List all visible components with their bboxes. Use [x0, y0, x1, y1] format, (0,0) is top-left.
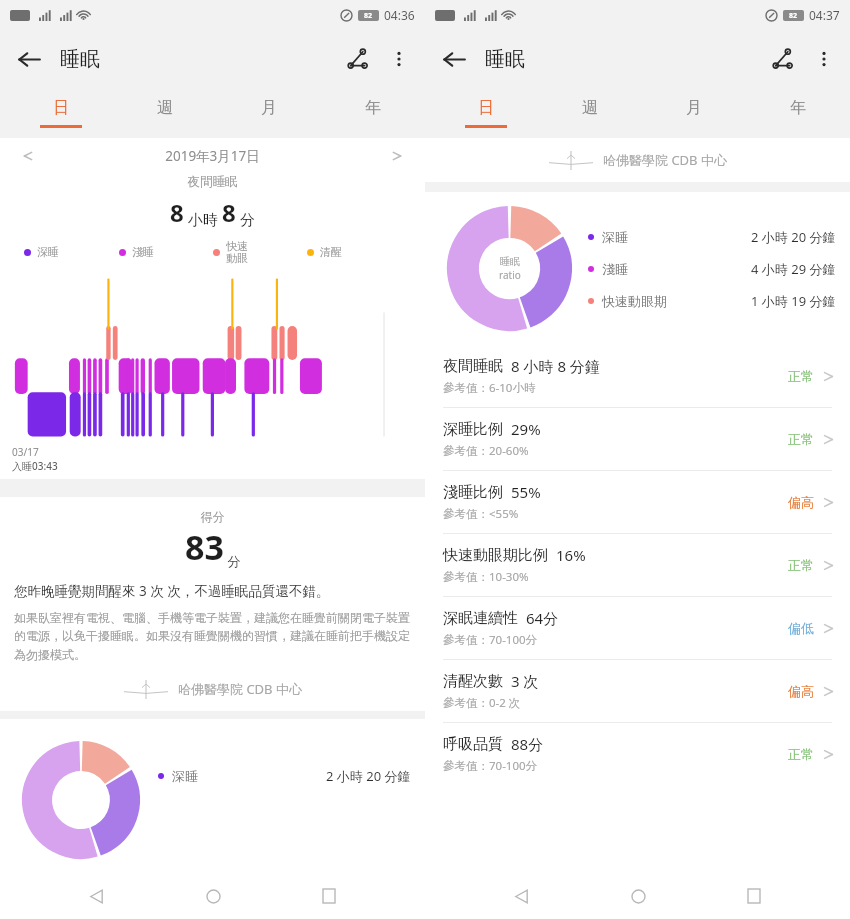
button[interactable]: Back: [8, 38, 50, 80]
button[interactable]: 月: [642, 88, 746, 138]
staticText: 82: [789, 11, 798, 21]
staticText: 夜間睡眠: [443, 357, 503, 376]
staticText: 64分: [526, 608, 559, 628]
staticText: 快速 動眼: [226, 239, 248, 265]
staticText: 月: [686, 98, 702, 118]
staticText: 日: [53, 98, 69, 118]
button[interactable]: Previous day: [14, 142, 42, 170]
staticText: 4 小時 29 分鐘: [751, 260, 836, 278]
button[interactable]: 週: [538, 88, 642, 138]
button[interactable]: 週: [113, 88, 217, 138]
staticText: 清醒: [320, 245, 342, 259]
staticText: 深眠連續性: [443, 609, 518, 628]
staticText: 淺睡: [602, 261, 628, 277]
staticText: 夜間睡眠: [0, 174, 425, 190]
button[interactable]: 深眠連續性: [425, 597, 850, 659]
staticText: 參考值：10-30%: [443, 569, 529, 585]
staticText: 睡眠: [485, 47, 525, 72]
staticText: 您昨晚睡覺期間醒來 3 次 次，不過睡眠品質還不錯。: [14, 582, 330, 600]
button[interactable]: Recents: [734, 876, 774, 916]
staticText: 參考值：<55%: [443, 506, 519, 522]
staticText: 睡眠: [500, 255, 520, 268]
button[interactable]: Home: [193, 876, 233, 916]
button[interactable]: Home: [618, 876, 658, 916]
staticText: 分: [224, 552, 241, 570]
staticText: 03/17: [12, 445, 39, 459]
staticText: 正常: [788, 557, 814, 573]
button[interactable]: 年: [321, 88, 425, 138]
staticText: 83: [185, 524, 224, 570]
staticText: 3 次: [511, 671, 539, 691]
staticText: 82: [364, 11, 373, 21]
staticText: 快速動眼期比例: [443, 546, 548, 565]
staticText: 深睡: [172, 768, 198, 784]
staticText: 小時: [184, 209, 222, 229]
staticText: 偏高: [788, 494, 814, 510]
button[interactable]: Back: [501, 876, 541, 916]
staticText: 1 小時 19 分鐘: [751, 292, 836, 310]
staticText: 如果臥室裡有電視、電腦、手機等電子裝置，建議您在睡覺前關閉電子裝置的電源，以免干…: [14, 610, 411, 663]
staticText: 週: [582, 98, 598, 118]
button[interactable]: 年: [746, 88, 850, 138]
staticText: 入睡03:43: [12, 459, 58, 473]
button[interactable]: Recents: [309, 876, 349, 916]
staticText: 偏高: [788, 683, 814, 699]
staticText: 16%: [556, 545, 586, 565]
staticText: 04:36: [384, 7, 415, 23]
staticText: 8: [222, 196, 236, 229]
staticText: 8: [170, 196, 184, 229]
staticText: 29%: [511, 419, 541, 439]
button[interactable]: 月: [217, 88, 321, 138]
staticText: 淺睡比例: [443, 483, 503, 502]
staticText: 週: [157, 98, 173, 118]
button[interactable]: 淺睡比例: [425, 471, 850, 533]
staticText: 分: [236, 209, 255, 229]
button[interactable]: 日: [433, 88, 538, 138]
button[interactable]: 清醒次數: [425, 660, 850, 722]
button[interactable]: Share: [762, 38, 804, 80]
staticText: 參考值：0-2 次: [443, 695, 521, 711]
button[interactable]: 快速動眼期比例: [425, 534, 850, 596]
staticText: 深睡: [37, 245, 59, 259]
button[interactable]: More options: [379, 39, 419, 79]
button[interactable]: 呼吸品質: [425, 723, 850, 785]
staticText: 哈佛醫學院 CDB 中心: [603, 151, 727, 169]
staticText: 參考值：70-100分: [443, 758, 538, 774]
button[interactable]: More options: [804, 39, 844, 79]
button[interactable]: 日: [8, 88, 113, 138]
staticText: 2 小時 20 分鐘: [751, 228, 836, 246]
staticText: 偏低: [788, 620, 814, 636]
staticText: 2 小時 20 分鐘: [326, 767, 411, 785]
button[interactable]: Share: [337, 38, 379, 80]
staticText: 參考值：20-60%: [443, 443, 529, 459]
staticText: 淺睡: [132, 245, 154, 259]
staticText: 參考值：6-10小時: [443, 380, 536, 396]
staticText: 睡眠: [60, 47, 100, 72]
staticText: 正常: [788, 746, 814, 762]
staticText: 2019年3月17日: [42, 147, 383, 165]
button[interactable]: 夜間睡眠: [425, 345, 850, 407]
button[interactable]: 深睡比例: [425, 408, 850, 470]
staticText: 呼吸品質: [443, 735, 503, 754]
button[interactable]: Next day: [383, 142, 411, 170]
staticText: 正常: [788, 431, 814, 447]
staticText: 得分: [0, 509, 425, 524]
staticText: ratio: [499, 268, 521, 282]
staticText: 年: [790, 98, 806, 118]
staticText: 深睡: [602, 229, 628, 245]
staticText: 55%: [511, 482, 541, 502]
staticText: 8 小時 8 分鐘: [511, 356, 600, 376]
button[interactable]: Back: [76, 876, 116, 916]
staticText: 88分: [511, 734, 544, 754]
staticText: 參考值：70-100分: [443, 632, 538, 648]
staticText: 月: [261, 98, 277, 118]
staticText: 深睡比例: [443, 420, 503, 439]
staticText: 快速動眼期: [602, 293, 667, 309]
staticText: 日: [478, 98, 494, 118]
staticText: 哈佛醫學院 CDB 中心: [178, 680, 302, 698]
staticText: 年: [365, 98, 381, 118]
staticText: 正常: [788, 368, 814, 384]
staticText: 清醒次數: [443, 672, 503, 691]
button[interactable]: Back: [433, 38, 475, 80]
